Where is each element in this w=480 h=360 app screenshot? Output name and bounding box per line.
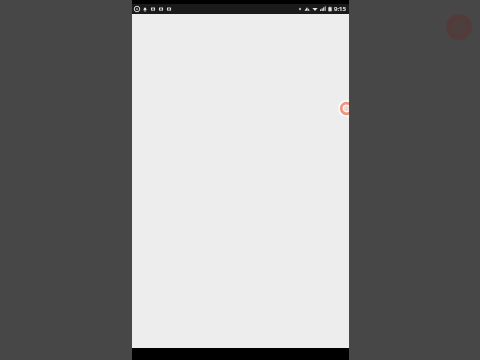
staticText: 9:15 xyxy=(334,5,346,13)
